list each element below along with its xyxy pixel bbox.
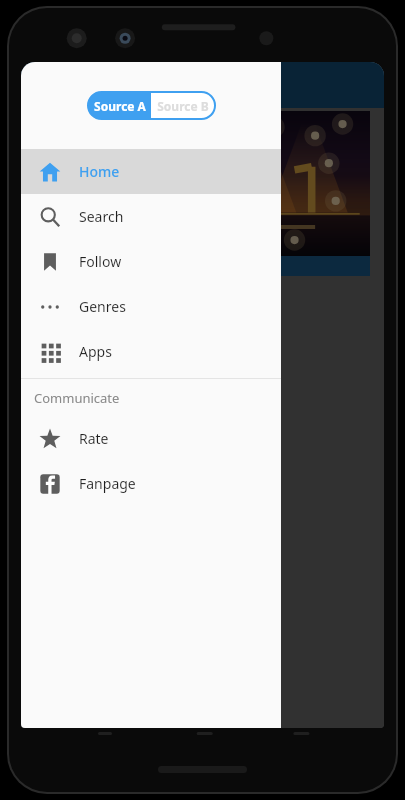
button[interactable]: Apps	[21, 329, 281, 374]
button[interactable]: Home	[21, 149, 281, 194]
staticText: Home	[79, 162, 120, 181]
staticText: Apps	[79, 342, 112, 361]
staticText: Source A	[94, 98, 146, 114]
button[interactable]: Source B	[151, 92, 215, 119]
button[interactable]	[27, 111, 370, 256]
button[interactable]: Search	[21, 194, 281, 239]
button[interactable]: Genres	[21, 284, 281, 329]
staticText: Fanpage	[79, 474, 136, 493]
button[interactable]: Happy new year 2021 - anime con co	[27, 256, 370, 276]
staticText: Follow	[79, 252, 122, 271]
button[interactable]: Rate	[21, 416, 281, 461]
button[interactable]: Follow	[21, 239, 281, 284]
button[interactable]: Fanpage	[21, 461, 281, 506]
button[interactable]: Source A	[88, 92, 151, 119]
staticText: Genres	[79, 297, 126, 316]
staticText: Happy new year 2021 - anime con co	[27, 259, 239, 274]
staticText: Source B	[157, 98, 209, 114]
staticText: Rate	[79, 429, 109, 448]
staticText: Communicate	[34, 389, 120, 407]
staticText: Search	[79, 207, 124, 226]
staticText: Anime Free	[105, 71, 217, 100]
